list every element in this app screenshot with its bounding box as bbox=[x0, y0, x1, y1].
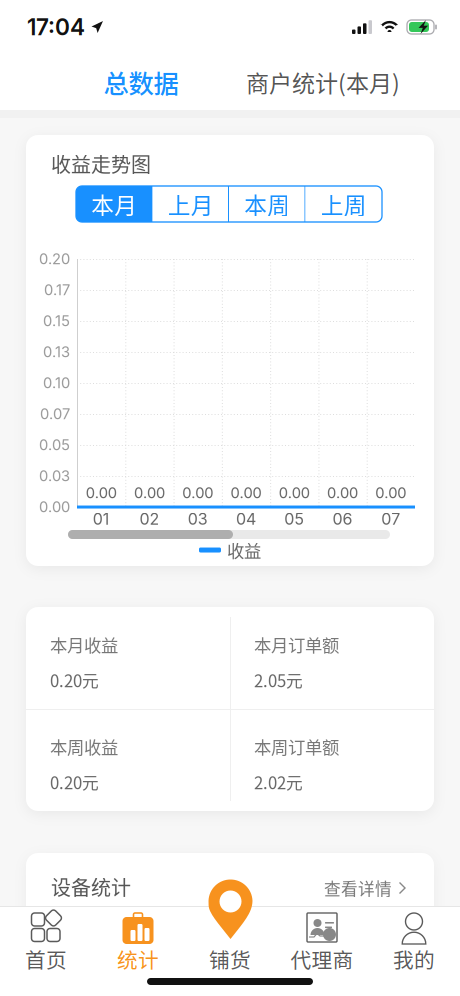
button[interactable]: 商户统计(本月) bbox=[235, 54, 411, 110]
staticText: 0.00 bbox=[279, 484, 310, 502]
staticText: 2.05元 bbox=[254, 668, 303, 692]
staticText: 收益走势图 bbox=[51, 149, 151, 178]
staticText: 本周订单额 bbox=[254, 734, 339, 759]
staticText: 收益 bbox=[227, 537, 261, 563]
staticText: 上月 bbox=[168, 188, 214, 220]
button[interactable]: 上周 bbox=[305, 186, 382, 222]
staticText: 总数据 bbox=[103, 64, 178, 100]
staticText: 0.00 bbox=[39, 498, 70, 516]
staticText: 统计 bbox=[117, 944, 159, 974]
staticText: 本月收益 bbox=[50, 632, 118, 657]
button[interactable]: 统计 bbox=[92, 906, 184, 996]
button[interactable]: 查看详情 bbox=[296, 875, 406, 901]
staticText: 0.00 bbox=[327, 484, 358, 502]
button[interactable]: 上月 bbox=[152, 186, 229, 222]
button[interactable]: 代理商 bbox=[276, 906, 368, 996]
staticText: 17:04 bbox=[27, 13, 85, 41]
staticText: 0.05 bbox=[39, 436, 70, 454]
staticText: 0.00 bbox=[230, 484, 261, 502]
button[interactable]: 本周 bbox=[229, 186, 305, 222]
staticText: 0.13 bbox=[43, 343, 70, 361]
staticText: 0.00 bbox=[182, 484, 213, 502]
staticText: 我的 bbox=[393, 944, 435, 974]
staticText: 05 bbox=[284, 509, 304, 529]
staticText: 0.15 bbox=[43, 312, 70, 330]
staticText: 本月订单额 bbox=[254, 632, 339, 657]
button[interactable]: 铺货 bbox=[184, 906, 276, 996]
staticText: 03 bbox=[188, 509, 208, 529]
staticText: 0.00 bbox=[375, 484, 406, 502]
staticText: 01 bbox=[93, 509, 110, 529]
staticText: 0.00 bbox=[134, 484, 165, 502]
staticText: 本周 bbox=[244, 188, 290, 220]
staticText: 商户统计(本月) bbox=[246, 65, 400, 99]
button[interactable]: 我的 bbox=[368, 906, 460, 996]
staticText: 设备统计 bbox=[51, 872, 131, 901]
staticText: 02 bbox=[139, 509, 159, 529]
staticText: 0.10 bbox=[43, 374, 70, 392]
staticText: 0.03 bbox=[39, 467, 70, 485]
staticText: 代理商 bbox=[290, 944, 353, 974]
staticText: 0.20元 bbox=[50, 668, 99, 692]
button[interactable]: 首页 bbox=[0, 906, 92, 996]
staticText: 本月 bbox=[91, 188, 137, 220]
button[interactable]: 本月 bbox=[76, 186, 152, 222]
staticText: 上周 bbox=[321, 188, 367, 220]
staticText: 0.20元 bbox=[50, 770, 99, 794]
staticText: 首页 bbox=[25, 944, 67, 974]
staticText: 查看详情 bbox=[324, 876, 392, 900]
staticText: 0.00 bbox=[86, 484, 117, 502]
button[interactable]: 铺货 bbox=[208, 879, 253, 939]
staticText: 铺货 bbox=[209, 944, 251, 974]
staticText: 0.20 bbox=[39, 250, 70, 268]
staticText: 06 bbox=[333, 509, 353, 529]
staticText: 04 bbox=[236, 509, 256, 529]
staticText: 0.07 bbox=[40, 405, 70, 423]
staticText: 2.02元 bbox=[254, 770, 303, 794]
staticText: 0.17 bbox=[44, 281, 70, 299]
staticText: 07 bbox=[381, 509, 400, 529]
button[interactable]: 总数据 bbox=[73, 54, 209, 110]
staticText: 本周收益 bbox=[50, 734, 118, 759]
